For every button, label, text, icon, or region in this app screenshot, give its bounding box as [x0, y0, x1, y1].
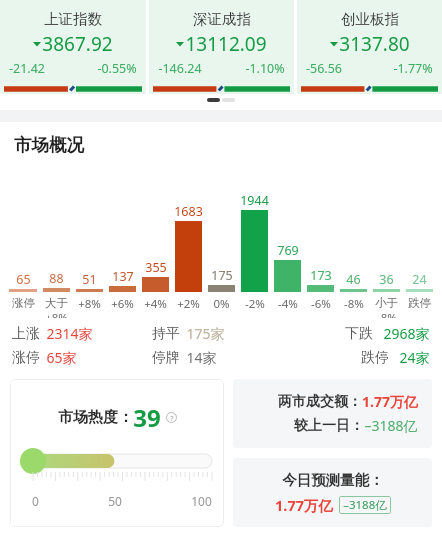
staticText: 355 — [145, 259, 167, 276]
staticText: -1.10% — [245, 60, 285, 77]
staticText: 大于 — [45, 296, 68, 310]
staticText: 1944 — [240, 192, 269, 209]
staticText: -2% — [245, 296, 265, 312]
staticText: -0.55% — [97, 60, 137, 77]
staticText: 今日预测量能： — [282, 471, 384, 489]
staticText: +6% — [111, 296, 134, 312]
staticText: -146.24 — [158, 60, 202, 77]
staticText: -8% — [344, 296, 364, 312]
button[interactable]: 创业板指 — [297, 0, 442, 94]
staticText: 51 — [82, 271, 97, 288]
staticText: -1.77% — [393, 60, 433, 77]
staticText: 3137.80 — [339, 31, 410, 57]
button[interactable]: 帮助 — [166, 412, 177, 423]
staticText: 36 — [379, 271, 394, 288]
staticText: +8% — [45, 310, 68, 318]
button[interactable]: 两市成交额： — [233, 379, 432, 448]
staticText: 持平 — [152, 325, 180, 343]
staticText: 1.77万亿 — [362, 392, 418, 411]
button[interactable]: 上证指数 — [0, 0, 146, 94]
staticText: 停牌 — [152, 349, 180, 367]
staticText: -8% — [377, 310, 397, 318]
staticText: -56.56 — [306, 60, 342, 77]
staticText: –3188亿 — [343, 497, 387, 513]
staticText: 涨停 — [12, 296, 35, 310]
staticText: -4% — [278, 296, 298, 312]
staticText: 小于 — [375, 296, 398, 310]
staticText: 1683 — [174, 203, 203, 220]
staticText: 46 — [346, 271, 361, 288]
staticText: 24 — [412, 271, 427, 288]
staticText: -6% — [311, 296, 331, 312]
staticText: 跌停 — [408, 296, 431, 310]
staticText: 100 — [191, 493, 212, 509]
button[interactable]: 今日预测量能： — [233, 458, 432, 527]
staticText: 137 — [112, 268, 134, 285]
staticText: 14家 — [186, 348, 217, 367]
staticText: 50 — [108, 493, 122, 509]
staticText: 创业板指 — [341, 10, 399, 28]
staticText: 市场热度： — [58, 408, 133, 427]
staticText: 下跌 — [345, 325, 373, 343]
staticText: 2968家 — [383, 324, 430, 343]
staticText: +2% — [177, 296, 200, 312]
button[interactable]: 深证成指 — [149, 0, 294, 94]
staticText: 跌停 — [361, 349, 389, 367]
staticText: 深证成指 — [193, 10, 251, 28]
staticText: 较上一日： — [294, 417, 364, 435]
staticText: 3867.92 — [42, 31, 113, 57]
staticText: 上证指数 — [44, 10, 102, 28]
staticText: 39 — [133, 401, 161, 434]
button[interactable]: 市场热度： — [10, 379, 224, 527]
staticText: ? — [170, 413, 174, 423]
staticText: 173 — [310, 267, 332, 284]
staticText: 1.77万亿 — [275, 495, 333, 515]
staticText: 24家 — [399, 348, 430, 367]
staticText: +4% — [144, 296, 167, 312]
staticText: 0 — [32, 493, 39, 509]
staticText: 769 — [277, 242, 299, 259]
staticText: 两市成交额： — [278, 393, 362, 411]
staticText: +8% — [78, 296, 101, 312]
staticText: 涨停 — [12, 349, 40, 367]
staticText: -21.42 — [9, 60, 45, 77]
staticText: 上涨 — [12, 325, 40, 343]
staticText: 0% — [213, 296, 230, 312]
staticText: 13112.09 — [185, 31, 267, 57]
staticText: 65家 — [46, 348, 77, 367]
staticText: 88 — [49, 270, 64, 287]
staticText: 175 — [211, 267, 233, 284]
staticText: 市场概况 — [14, 134, 84, 156]
staticText: 175家 — [186, 324, 225, 343]
staticText: 2314家 — [46, 324, 93, 343]
staticText: 65 — [16, 271, 31, 288]
staticText: –3188亿 — [364, 416, 418, 435]
